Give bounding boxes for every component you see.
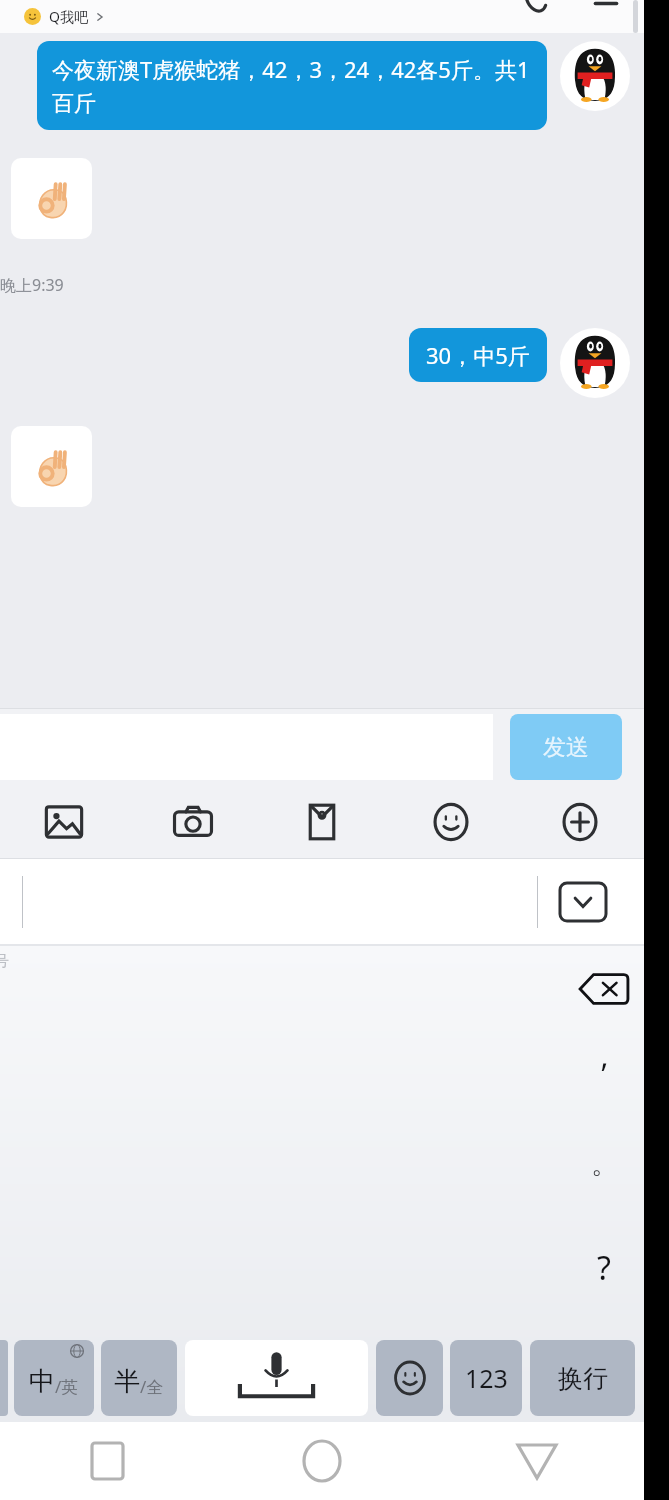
button[interactable]: 发送 [510,714,622,780]
button[interactable]: Photo [0,786,128,858]
button[interactable]: ! [564,1319,644,1422]
button[interactable] [560,41,630,111]
staticText: ! [600,1349,609,1393]
staticText: 今夜新澳T虎猴蛇猪，42，3，24，42各5斤。共1百斤 [52,54,532,117]
button[interactable]: Home [214,1422,429,1500]
button[interactable]: Chinese English toggle [14,1340,94,1416]
button[interactable]: Call [524,0,554,18]
button[interactable]: Space [185,1340,368,1416]
button[interactable]: More [515,786,644,858]
staticText: 晚上9:39 [0,274,584,296]
button[interactable]: Emoji [386,786,515,858]
button[interactable]: Symbols [0,1340,8,1416]
staticText: 123 [465,1361,508,1395]
staticText: 号 [0,952,9,971]
button[interactable]: ? [564,1216,644,1319]
button[interactable]: Numbers [450,1340,522,1416]
button[interactable]: , [564,1010,644,1113]
staticText: /全 [140,1375,164,1398]
button[interactable]: Emoji keyboard [376,1340,443,1416]
button[interactable]: Camera [128,786,257,858]
staticText: 发送 [543,733,589,762]
staticText: 换行 [558,1363,608,1394]
button[interactable]: Q我吧 [24,7,105,26]
button[interactable]: Minimize [592,0,620,10]
staticText: 30，中5斤 [426,340,530,370]
button[interactable]: 30，中5斤 [409,328,547,382]
button[interactable] [11,158,92,239]
staticText: ? [597,1246,611,1290]
button[interactable]: Collapse keyboard [560,883,606,921]
staticText: 。 [591,1148,617,1181]
button[interactable]: New line [530,1340,635,1416]
staticText: 半 [114,1365,140,1398]
button[interactable]: 。 [564,1113,644,1216]
button[interactable]: Recents [0,1422,214,1500]
button[interactable]: Red packet [257,786,386,858]
staticText: Q我吧 [49,7,88,26]
button[interactable]: Backspace [575,968,633,1010]
button[interactable]: 今夜新澳T虎猴蛇猪，42，3，24，42各5斤。共1百斤 [37,41,547,130]
button[interactable] [560,328,630,398]
staticText: /英 [55,1375,79,1398]
staticText: 中 [29,1365,55,1398]
button[interactable]: Half width toggle [101,1340,177,1416]
button[interactable]: Back [429,1422,644,1500]
staticText: , [600,1035,609,1076]
button[interactable] [11,426,92,507]
